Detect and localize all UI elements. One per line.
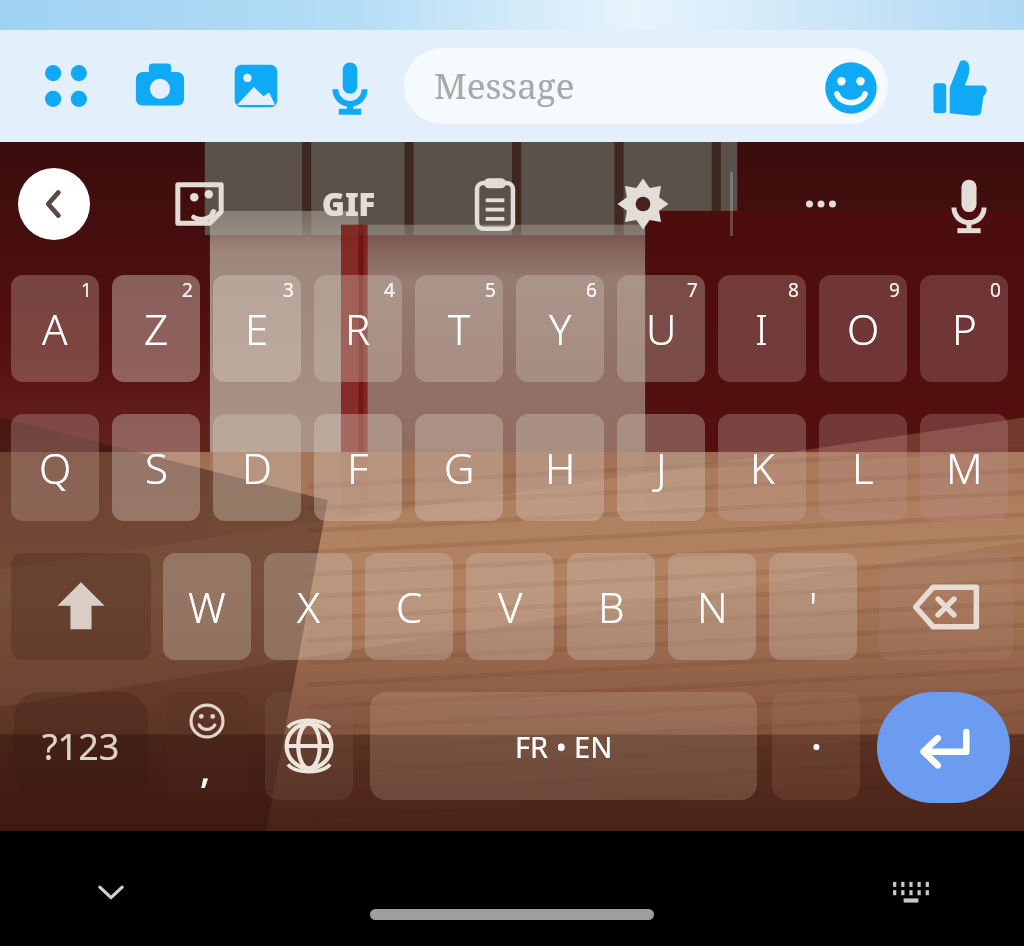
staticText: FR • EN xyxy=(515,727,613,766)
button[interactable]: L xyxy=(819,414,907,521)
button[interactable]: Y xyxy=(516,275,604,382)
staticText: X xyxy=(297,578,320,635)
staticText: 8 xyxy=(788,277,799,303)
button[interactable]: Stickers xyxy=(170,172,234,236)
staticText: O xyxy=(847,300,880,357)
staticText: T xyxy=(448,300,471,357)
button[interactable]: N xyxy=(668,553,756,660)
button[interactable]: Q xyxy=(11,414,99,521)
staticText: GIF xyxy=(322,183,376,225)
staticText: ?123 xyxy=(42,722,120,771)
staticText: ' xyxy=(809,578,818,635)
button[interactable]: Emoji xyxy=(823,60,879,116)
staticText: M xyxy=(946,439,983,496)
button[interactable]: T xyxy=(415,275,503,382)
button[interactable]: More apps xyxy=(38,58,94,114)
staticText: Z xyxy=(144,300,169,357)
button[interactable]: V xyxy=(466,553,554,660)
button[interactable]: J xyxy=(617,414,705,521)
button[interactable]: Backspace xyxy=(879,553,1013,660)
button[interactable]: P xyxy=(920,275,1008,382)
button[interactable]: O xyxy=(819,275,907,382)
staticText: 6 xyxy=(586,277,597,303)
staticText: Message xyxy=(434,62,575,110)
button[interactable]: Gallery xyxy=(228,58,284,114)
button[interactable]: Camera xyxy=(132,58,188,114)
button[interactable]: K xyxy=(718,414,806,521)
staticText: 7 xyxy=(687,277,698,303)
staticText: F xyxy=(347,439,369,496)
button[interactable]: Shift xyxy=(11,553,151,660)
staticText: G xyxy=(444,439,475,496)
button[interactable]: FR • EN xyxy=(370,692,757,800)
button[interactable]: ' xyxy=(769,553,857,660)
staticText: I xyxy=(755,300,769,357)
button[interactable]: U xyxy=(617,275,705,382)
button[interactable]: Clipboard xyxy=(463,172,527,236)
staticText: D xyxy=(242,439,272,496)
staticText: R xyxy=(345,300,371,357)
button[interactable]: GIF xyxy=(310,172,388,236)
staticText: A xyxy=(42,300,68,357)
staticText: L xyxy=(852,439,874,496)
staticText: . xyxy=(811,707,822,761)
button[interactable]: I xyxy=(718,275,806,382)
button[interactable]: A xyxy=(11,275,99,382)
staticText: Y xyxy=(549,300,572,357)
button[interactable]: Send like xyxy=(930,60,988,118)
button[interactable]: C xyxy=(365,553,453,660)
button[interactable]: H xyxy=(516,414,604,521)
button[interactable]: Switch keyboard xyxy=(878,859,944,925)
button[interactable]: B xyxy=(567,553,655,660)
staticText: 0 xyxy=(990,277,1001,303)
staticText: H xyxy=(545,439,576,496)
staticText: K xyxy=(750,439,775,496)
button[interactable]: E xyxy=(213,275,301,382)
button[interactable]: Message xyxy=(404,48,888,124)
staticText: 3 xyxy=(283,277,294,303)
button[interactable]: R xyxy=(314,275,402,382)
button[interactable]: Settings xyxy=(611,172,675,236)
staticText: U xyxy=(646,300,677,357)
button[interactable]: More options xyxy=(789,172,853,236)
button[interactable]: M xyxy=(920,414,1008,521)
button[interactable]: Enter xyxy=(877,692,1010,803)
staticText: 9 xyxy=(889,277,900,303)
button[interactable]: Voice input xyxy=(937,172,1001,236)
button[interactable]: Hide keyboard xyxy=(78,859,144,925)
staticText: E xyxy=(245,300,269,357)
staticText: 2 xyxy=(182,277,193,303)
button[interactable]: Change language xyxy=(265,692,353,800)
button[interactable]: W xyxy=(163,553,251,660)
staticText: W xyxy=(188,578,226,635)
staticText: S xyxy=(145,439,168,496)
staticText: 1 xyxy=(81,277,92,303)
staticText: C xyxy=(396,578,423,635)
button[interactable]: . xyxy=(772,692,860,800)
staticText: P xyxy=(952,300,977,357)
button[interactable]: Back xyxy=(18,168,90,240)
staticText: B xyxy=(598,578,625,635)
button[interactable]: D xyxy=(213,414,301,521)
staticText: N xyxy=(697,578,728,635)
button[interactable]: G xyxy=(415,414,503,521)
staticText: 5 xyxy=(485,277,496,303)
staticText: V xyxy=(498,578,523,635)
button[interactable]: F xyxy=(314,414,402,521)
button[interactable]: ?123 xyxy=(14,692,148,800)
button[interactable]: S xyxy=(112,414,200,521)
button[interactable]: Voice message xyxy=(322,58,378,114)
staticText: Q xyxy=(39,439,72,496)
button[interactable]: Z xyxy=(112,275,200,382)
button[interactable]: X xyxy=(264,553,352,660)
staticText: , xyxy=(200,742,211,794)
button[interactable]: Emoji and comma xyxy=(166,692,248,800)
staticText: 4 xyxy=(384,277,395,303)
staticText: J xyxy=(656,439,667,496)
